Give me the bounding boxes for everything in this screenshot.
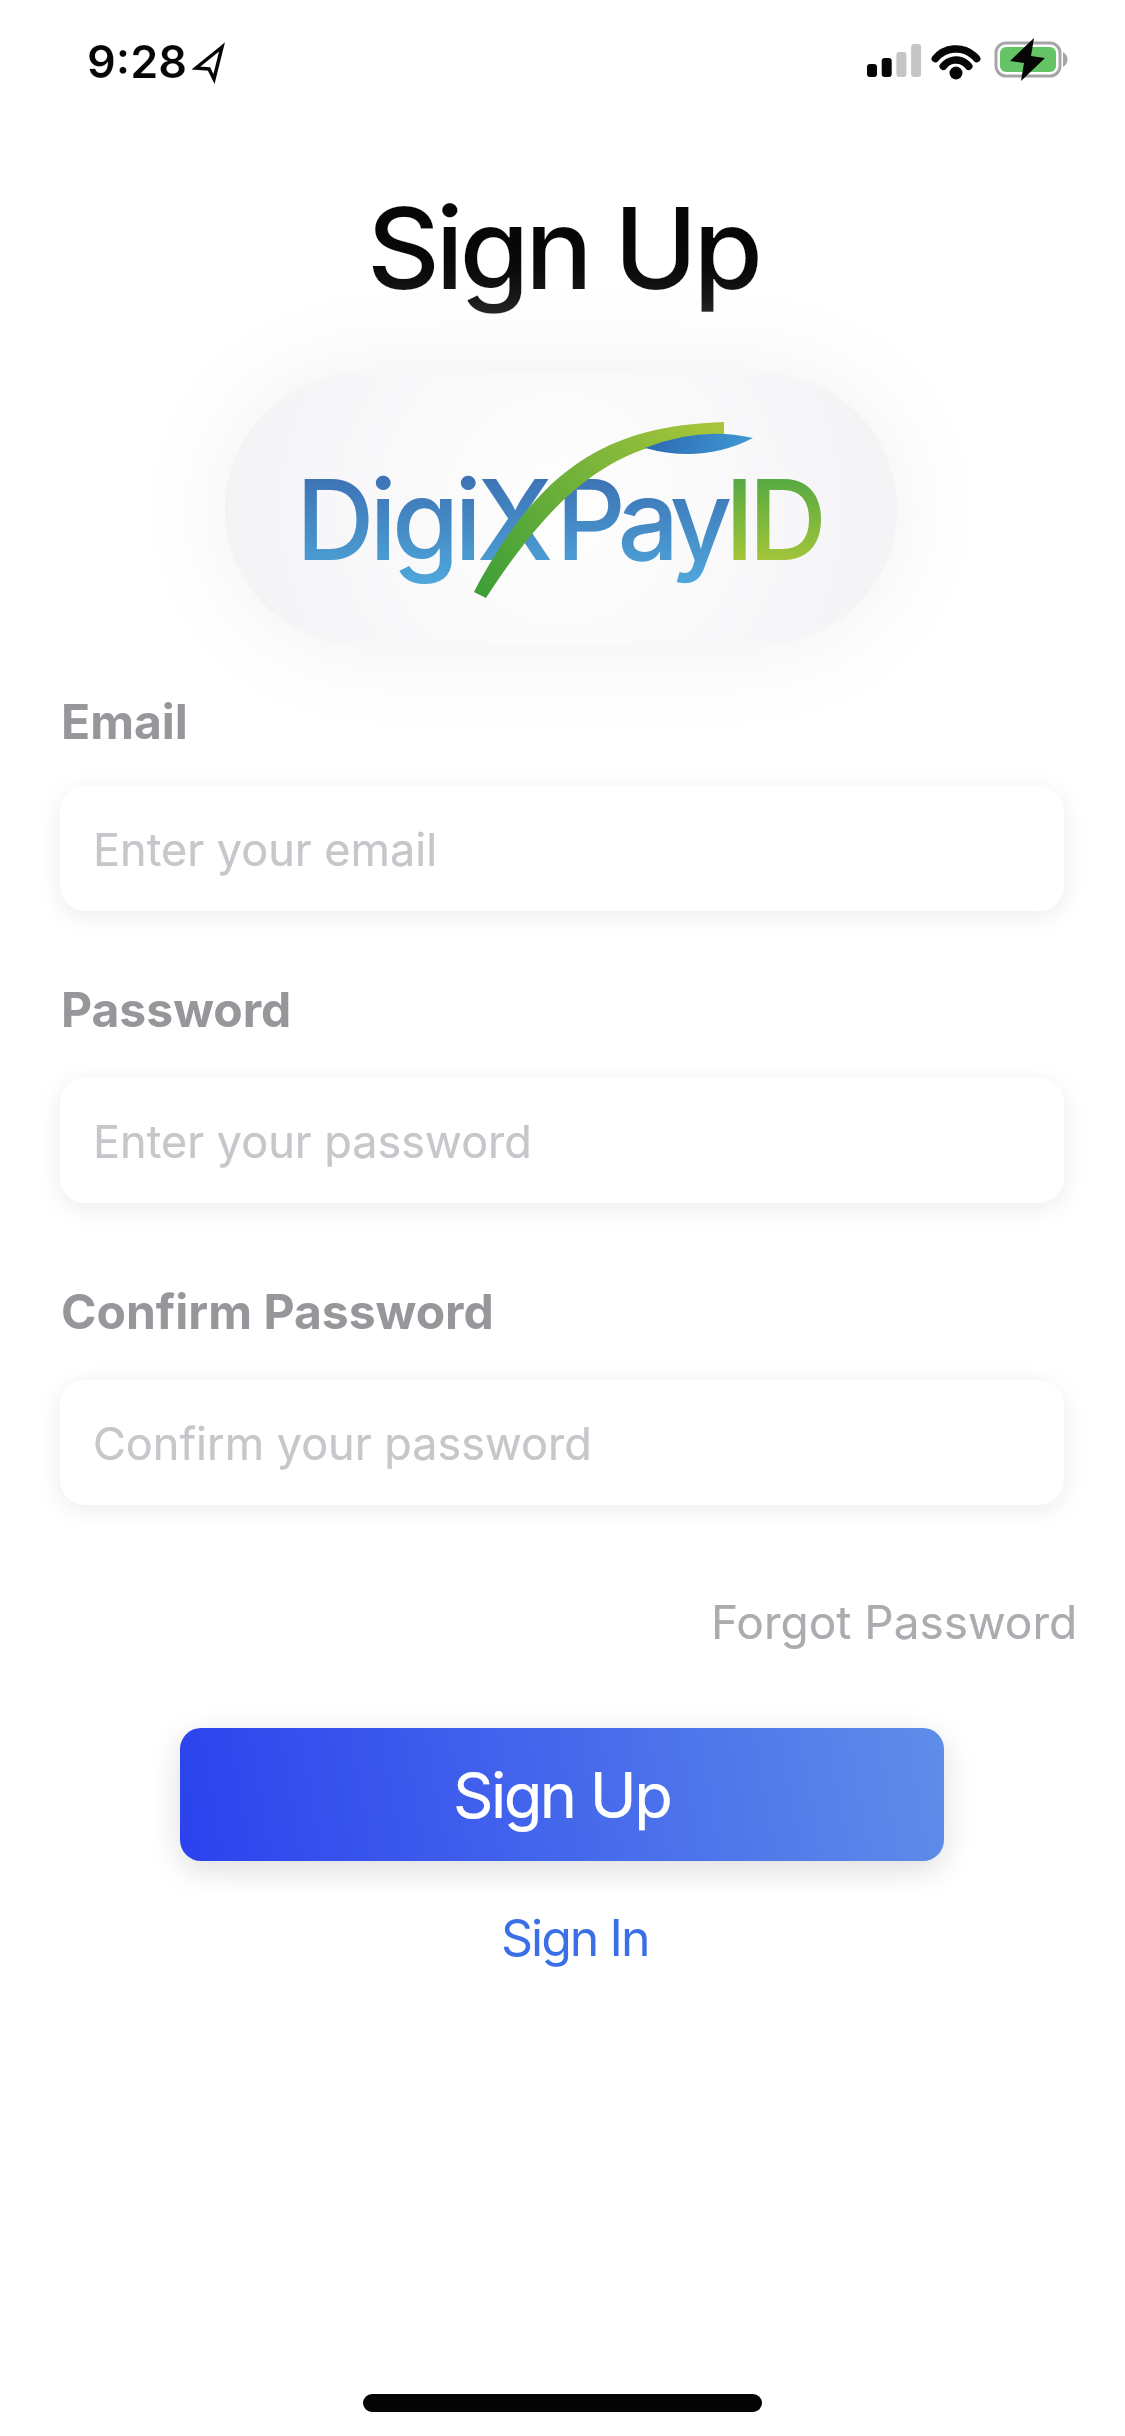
button[interactable]: Enter your password	[60, 1078, 1064, 1203]
staticText: Sign Up	[453, 1757, 671, 1833]
button[interactable]: Enter your email	[60, 786, 1064, 911]
staticText: Pay	[556, 451, 725, 587]
staticText: 9:28	[87, 34, 187, 88]
staticText: Confirm your password	[93, 1416, 592, 1470]
staticText: Enter your password	[93, 1114, 532, 1168]
button[interactable]: Confirm your password	[60, 1380, 1064, 1505]
staticText: Enter your email	[93, 822, 438, 876]
button[interactable]: Forgot Password	[711, 1594, 1078, 1650]
button[interactable]: Sign Up	[180, 1728, 944, 1861]
staticText: Password	[61, 980, 292, 1038]
staticText: Confirm Password	[61, 1282, 494, 1340]
staticText: DigiX	[296, 451, 549, 587]
staticText: ID	[725, 451, 822, 587]
staticText: Sign Up	[367, 180, 759, 317]
staticText: Email	[61, 692, 188, 750]
button[interactable]: Sign In	[501, 1908, 649, 1968]
